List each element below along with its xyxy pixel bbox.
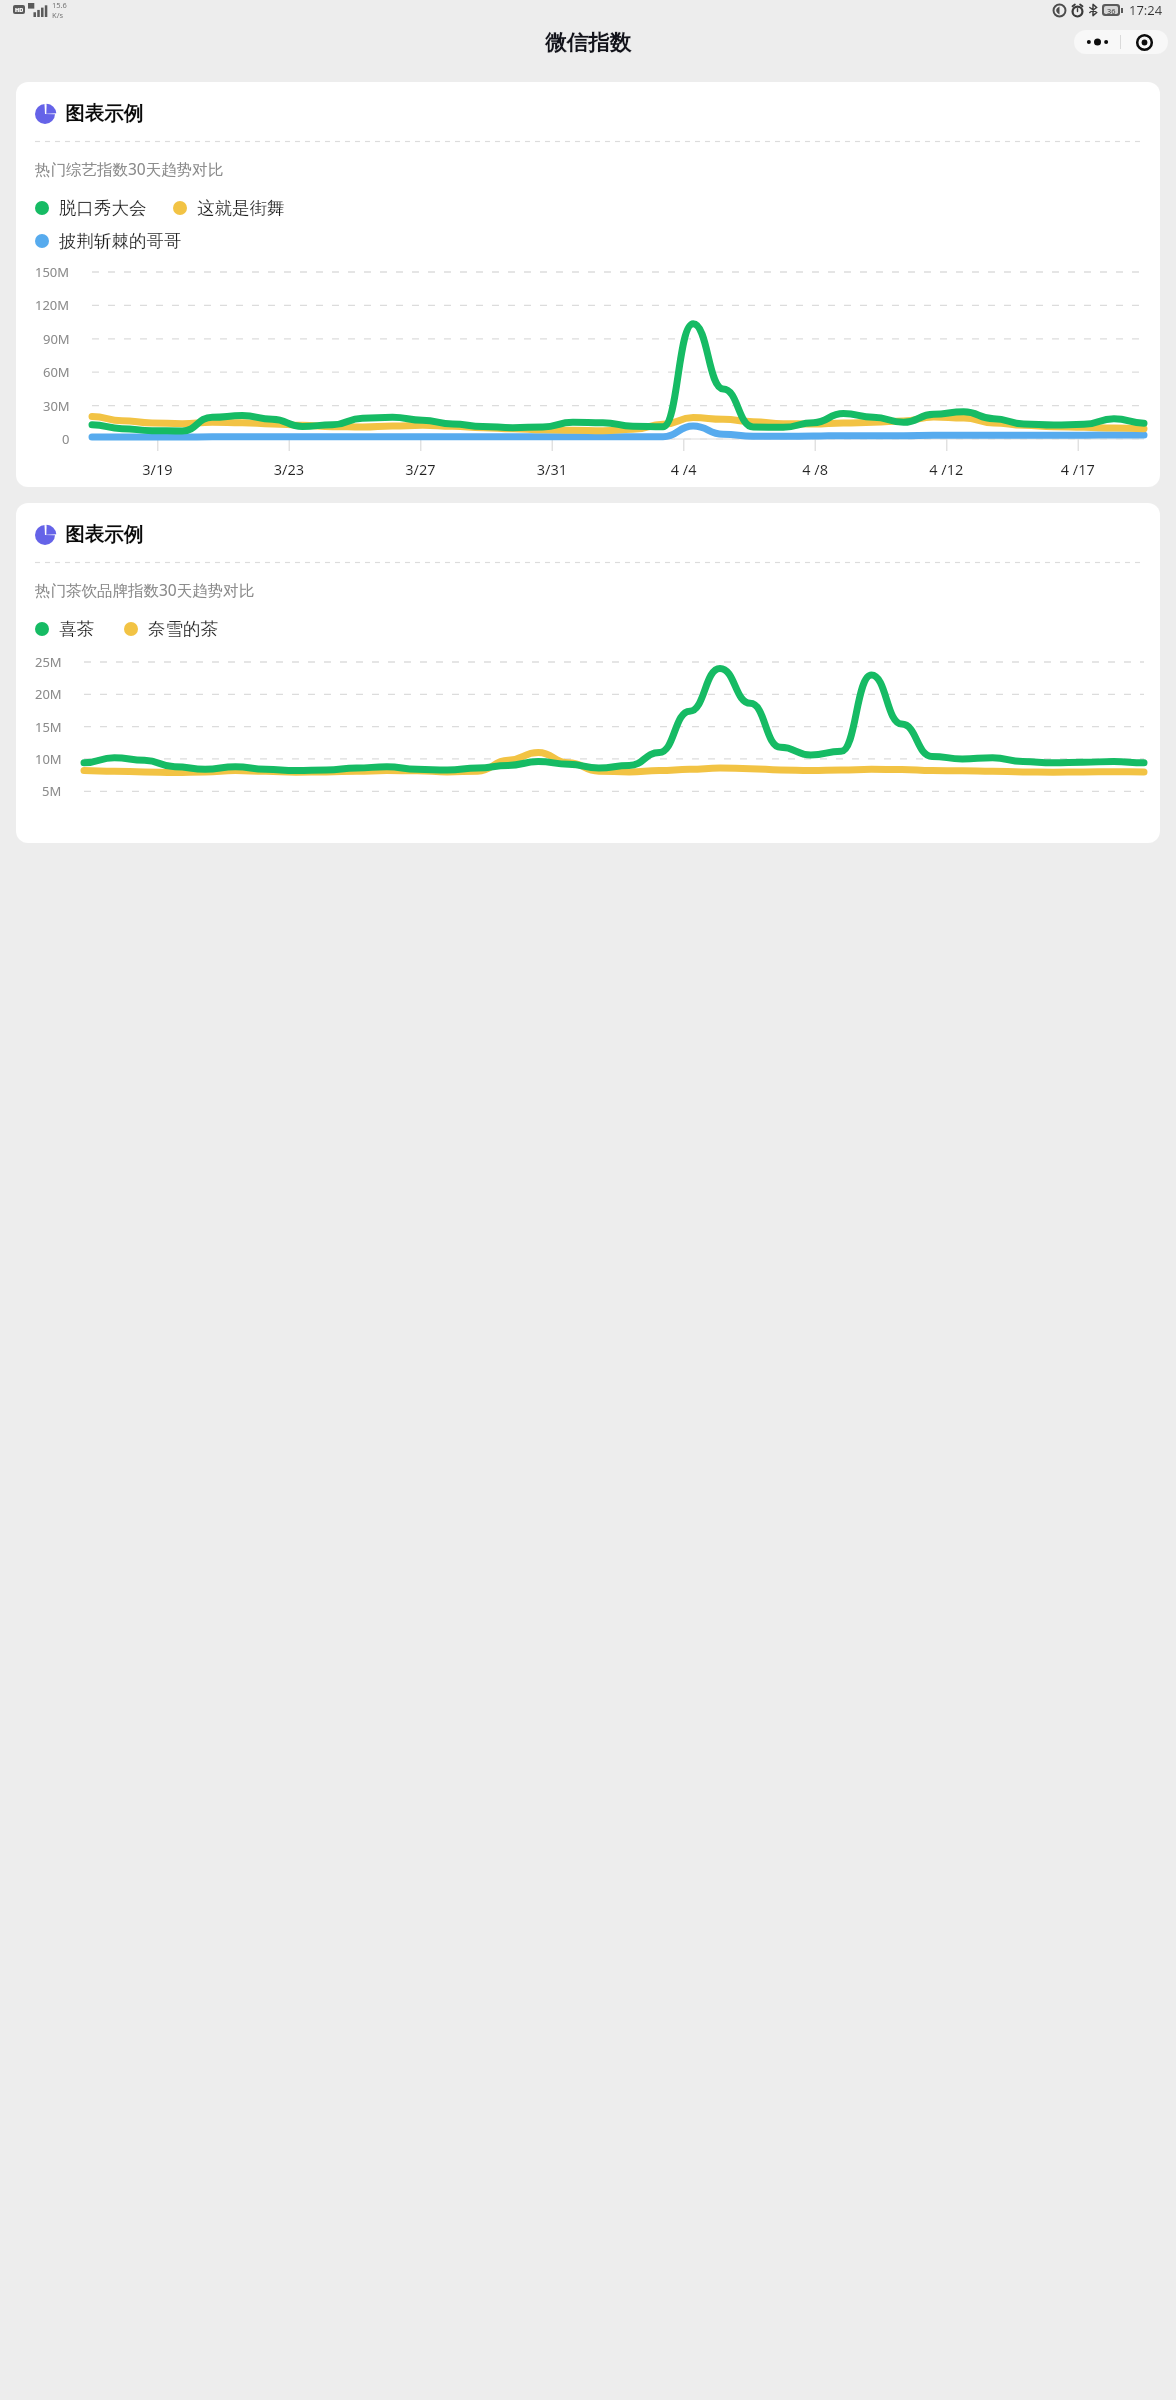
staticText: 图表示例 (65, 101, 143, 126)
button[interactable]: 脱口秀大会 (35, 197, 147, 219)
button[interactable]: 奈雪的茶 (124, 618, 218, 640)
button[interactable]: Close mini program (1121, 30, 1168, 54)
staticText: 披荆斩棘的哥哥 (59, 230, 182, 252)
staticText: 脱口秀大会 (59, 197, 147, 219)
button[interactable]: 喜茶 (35, 618, 94, 640)
staticText: 热门综艺指数30天趋势对比 (35, 158, 224, 179)
staticText: 36 (1107, 6, 1116, 14)
staticText: K/s (52, 10, 64, 19)
staticText: HD (15, 6, 24, 13)
button[interactable]: 图表示例 (16, 503, 1160, 843)
button[interactable]: More options (1074, 30, 1120, 54)
button[interactable]: 这就是街舞 (173, 197, 285, 219)
staticText: 图表示例 (65, 522, 143, 547)
button[interactable]: 披荆斩棘的哥哥 (35, 230, 182, 252)
button[interactable]: 图表示例 (16, 82, 1160, 487)
staticText: 热门茶饮品牌指数30天趋势对比 (35, 579, 255, 600)
staticText: 奈雪的茶 (148, 618, 218, 640)
staticText: 这就是街舞 (197, 197, 285, 219)
staticText: 喜茶 (59, 618, 94, 640)
staticText: 15.6 (52, 0, 67, 10)
staticText: 微信指数 (545, 29, 631, 56)
staticText: 17:24 (1129, 1, 1163, 19)
